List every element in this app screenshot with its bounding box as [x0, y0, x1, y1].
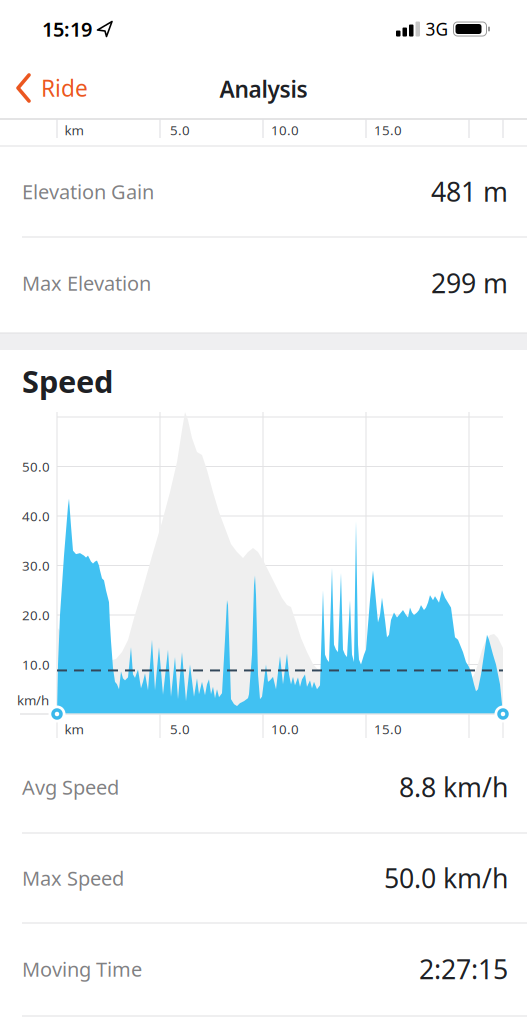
staticText: 8.8 km/h	[399, 769, 508, 805]
staticText: Elevation Gain	[22, 178, 154, 205]
staticText: km/h	[17, 691, 49, 709]
staticText: Max Speed	[22, 865, 124, 891]
staticText: 5.0	[170, 121, 190, 139]
staticText: Max Elevation	[22, 270, 151, 296]
staticText: 15.0	[374, 121, 402, 139]
staticText: 5.0	[170, 720, 190, 738]
staticText: 15:19	[42, 16, 92, 42]
staticText: km	[64, 720, 83, 738]
staticText: 2:27:15	[419, 951, 508, 987]
staticText: 299 m	[431, 265, 508, 301]
staticText: 15.0	[374, 720, 402, 738]
staticText: 481 m	[431, 174, 508, 209]
staticText: 40.0	[22, 507, 50, 525]
staticText: 50.0 km/h	[384, 860, 508, 896]
staticText: 20.0	[22, 606, 50, 624]
staticText: 10.0	[271, 121, 299, 139]
button[interactable]: Back to Ride	[16, 70, 88, 106]
staticText: Speed	[22, 361, 113, 401]
staticText: Ride	[41, 73, 88, 103]
staticText: 10.0	[22, 656, 50, 673]
staticText: 3G	[425, 17, 448, 40]
button[interactable]: Adjust range end	[494, 705, 511, 722]
staticText: 10.0	[271, 720, 299, 738]
staticText: km	[64, 121, 83, 139]
staticText: 50.0	[22, 458, 50, 475]
button[interactable]: Adjust range start	[48, 705, 65, 722]
staticText: Analysis	[219, 74, 307, 104]
staticText: Avg Speed	[22, 774, 119, 800]
staticText: 30.0	[22, 557, 50, 574]
staticText: Moving Time	[22, 956, 142, 982]
